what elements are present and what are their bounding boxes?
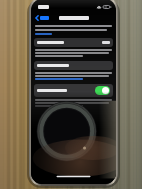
button[interactable] (34, 61, 113, 70)
button[interactable]: Optimiertes Laden aktiviert (95, 86, 110, 95)
button[interactable] (34, 38, 113, 47)
button[interactable]: Zurück (34, 14, 50, 22)
button[interactable]: Optimiertes Laden aktiviert (34, 84, 113, 97)
